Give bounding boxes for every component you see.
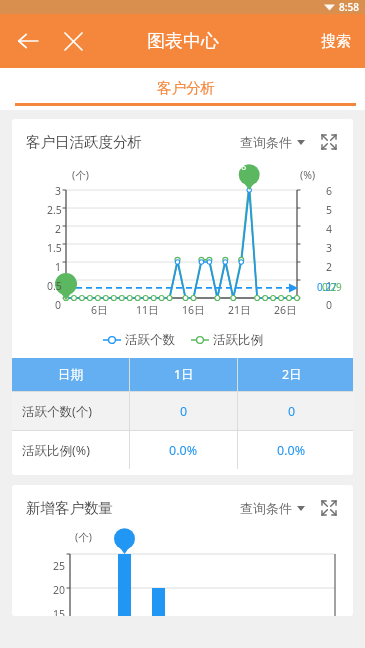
staticText: 1日: [174, 366, 194, 383]
button[interactable]: 查询条件: [237, 497, 308, 519]
staticText: 0: [326, 298, 333, 312]
staticText: (个): [75, 530, 92, 544]
staticText: 客户日活跃度分析: [26, 133, 142, 151]
button[interactable]: 活跃个数(个): [12, 392, 129, 430]
staticText: (%): [300, 168, 316, 182]
button[interactable]: Back: [8, 21, 48, 61]
staticText: 21日: [228, 303, 251, 317]
staticText: 查询条件: [240, 500, 292, 516]
staticText: 1.5: [47, 241, 62, 255]
staticText: 26日: [274, 303, 297, 317]
staticText: 6日: [91, 303, 108, 317]
staticText: 16日: [182, 303, 205, 317]
staticText: 活跃比例(%): [22, 442, 90, 459]
button[interactable]: 客户分析: [6, 68, 365, 110]
staticText: 查询条件: [240, 134, 292, 150]
staticText: 1: [326, 279, 333, 293]
button[interactable]: 日期: [12, 358, 129, 391]
staticText: 4: [326, 222, 333, 236]
staticText: 2: [55, 222, 62, 236]
button[interactable]: 0: [238, 392, 345, 430]
button[interactable]: Fullscreen: [317, 130, 341, 154]
staticText: 0.0%: [169, 442, 198, 459]
button[interactable]: 活跃个数: [103, 332, 175, 348]
staticText: 1: [55, 260, 62, 274]
staticText: 图表中心: [147, 30, 219, 53]
staticText: 3: [55, 184, 62, 198]
button[interactable]: 2日: [238, 358, 345, 391]
staticText: 搜索: [321, 32, 351, 51]
staticText: 8:58: [339, 0, 359, 14]
staticText: 15: [53, 607, 66, 616]
staticText: 3: [326, 241, 333, 255]
button[interactable]: 活跃比例: [191, 332, 263, 348]
staticText: 客户分析: [157, 79, 215, 97]
button[interactable]: 0: [130, 392, 237, 430]
button[interactable]: Close: [53, 21, 93, 61]
staticText: 2.5: [47, 203, 62, 217]
button[interactable]: 搜索: [307, 24, 365, 59]
staticText: 0.27: [317, 280, 337, 294]
staticText: 2日: [282, 366, 302, 383]
staticText: 6: [241, 160, 247, 172]
staticText: 日期: [58, 367, 83, 383]
staticText: 活跃个数: [125, 332, 175, 348]
staticText: 0: [288, 403, 296, 420]
button[interactable]: 查询条件: [237, 131, 308, 153]
staticText: (个): [72, 168, 89, 182]
staticText: 5: [326, 203, 333, 217]
staticText: 活跃比例: [213, 332, 263, 348]
staticText: 25: [53, 559, 66, 573]
button[interactable]: Fullscreen: [317, 496, 341, 520]
staticText: 0.5: [47, 279, 62, 293]
staticText: 11日: [136, 303, 159, 317]
button[interactable]: 0.0%: [130, 431, 237, 469]
staticText: 0: [180, 403, 188, 420]
staticText: 新增客户数量: [26, 499, 113, 517]
button[interactable]: 0.0%: [238, 431, 345, 469]
staticText: 6: [326, 184, 333, 198]
staticText: 0: [55, 298, 62, 312]
button[interactable]: 活跃比例(%): [12, 431, 129, 469]
staticText: 0.29: [322, 280, 342, 294]
staticText: 活跃个数(个): [22, 403, 93, 420]
staticText: 20: [53, 583, 66, 597]
button[interactable]: 1日: [130, 358, 237, 391]
staticText: 0.0%: [277, 442, 306, 459]
staticText: 2: [326, 260, 333, 274]
